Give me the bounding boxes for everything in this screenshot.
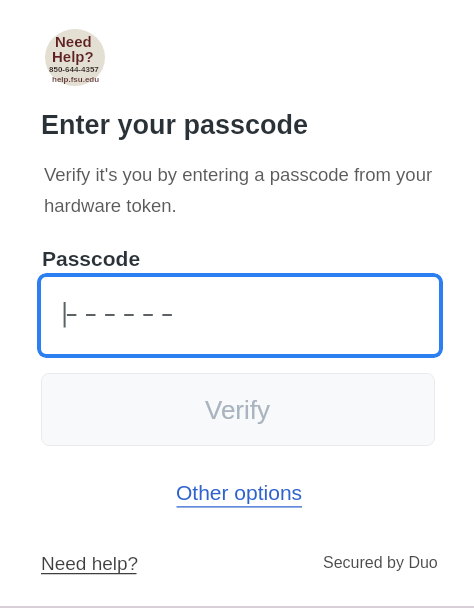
- button[interactable]: Verify: [41, 373, 435, 446]
- staticText: Verify it's you by entering a passcode f…: [44, 164, 444, 215]
- staticText: Passcode: [42, 247, 141, 270]
- button[interactable]: Need help?: [41, 553, 138, 577]
- button[interactable]: Passcode entry field: [37, 273, 443, 358]
- staticText: Enter your passcode: [41, 110, 309, 140]
- button[interactable]: Need Help? 850-644-4357 help.fsu.edu: [45, 29, 105, 86]
- staticText: Verify: [205, 395, 271, 424]
- staticText: 850-644-4357: [49, 65, 99, 74]
- staticText: Other options: [176, 481, 303, 504]
- staticText: Need: [55, 33, 92, 50]
- staticText: Secured by Duo: [323, 554, 438, 572]
- staticText: Help?: [52, 48, 94, 65]
- staticText: help.fsu.edu: [52, 75, 100, 84]
- staticText: Need help?: [41, 553, 138, 574]
- button[interactable]: Other options: [176, 481, 303, 510]
